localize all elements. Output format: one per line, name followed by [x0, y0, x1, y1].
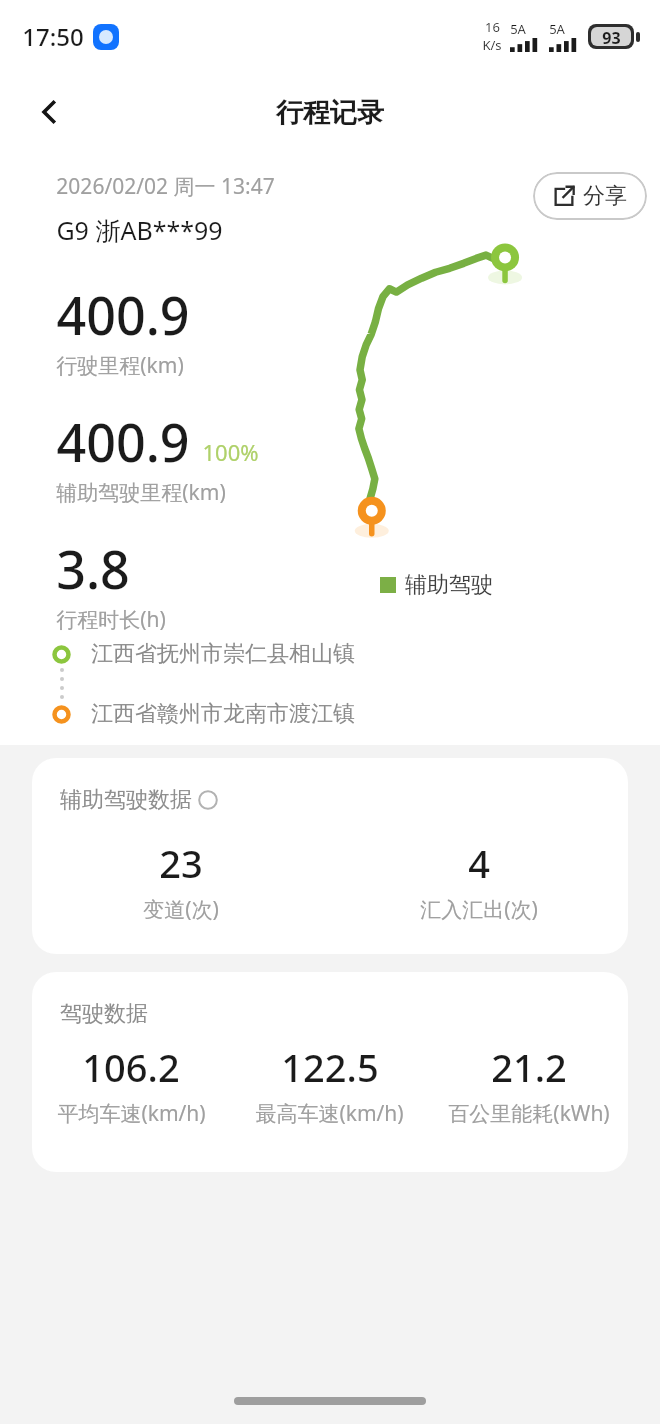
- staticText: 百公里能耗(kWh): [448, 1099, 610, 1128]
- staticText: 辅助驾驶: [405, 571, 493, 599]
- staticText: 400.9: [56, 279, 190, 350]
- staticText: 23: [159, 837, 203, 889]
- staticText: 行程时长(h): [56, 605, 166, 634]
- staticText: 21.2: [491, 1041, 567, 1093]
- staticText: 行驶里程(km): [56, 351, 184, 380]
- staticText: G9 浙AB***99: [56, 213, 223, 247]
- staticText: 5A: [549, 20, 565, 38]
- button[interactable]: Back: [18, 80, 82, 144]
- staticText: 3.8: [56, 533, 130, 604]
- staticText: 17:50: [22, 20, 84, 53]
- staticText: 16: [485, 18, 500, 36]
- staticText: 4: [468, 837, 490, 889]
- staticText: 驾驶数据: [60, 1000, 148, 1028]
- staticText: 93: [602, 27, 621, 46]
- staticText: 122.5: [281, 1041, 379, 1093]
- staticText: 100%: [202, 437, 259, 467]
- button[interactable]: Info: [198, 790, 218, 810]
- staticText: 106.2: [82, 1041, 180, 1093]
- staticText: 辅助驾驶数据: [60, 786, 192, 814]
- staticText: 行程记录: [276, 96, 384, 130]
- staticText: 平均车速(km/h): [57, 1099, 206, 1128]
- staticText: 江西省赣州市龙南市渡江镇: [91, 700, 355, 728]
- staticText: 400.9: [56, 406, 190, 477]
- staticText: 5A: [510, 20, 526, 38]
- staticText: 江西省抚州市崇仁县相山镇: [91, 640, 355, 668]
- staticText: 分享: [583, 182, 627, 210]
- staticText: K/s: [482, 36, 502, 54]
- staticText: 变道(次): [143, 895, 219, 924]
- button[interactable]: 分享: [533, 172, 647, 220]
- staticText: 最高车速(km/h): [255, 1099, 404, 1128]
- staticText: 汇入汇出(次): [420, 895, 538, 924]
- staticText: 2026/02/02 周一 13:47: [56, 172, 275, 201]
- staticText: 辅助驾驶里程(km): [56, 478, 226, 507]
